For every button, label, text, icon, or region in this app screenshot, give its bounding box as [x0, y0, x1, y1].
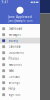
staticText: Calendar [8, 45, 20, 48]
staticText: Settings [8, 81, 19, 84]
button[interactable]: Sign out [0, 92, 40, 98]
button[interactable]: Settings [0, 80, 40, 86]
button[interactable]: Documents [0, 50, 40, 56]
staticText: Activity [8, 39, 17, 42]
staticText: Messages [8, 33, 20, 36]
staticText: 9:41 [1, 0, 8, 4]
staticText: Help [8, 87, 15, 90]
button[interactable]: Dashboard [0, 26, 40, 32]
staticText: Sign out [8, 93, 20, 96]
staticText: Contacts [8, 75, 19, 78]
button[interactable]: Photos [0, 56, 40, 62]
staticText: Tasks [8, 69, 13, 72]
button[interactable]: Calendar [0, 44, 40, 50]
button[interactable]: Contacts [0, 74, 40, 80]
staticText: Photos [8, 57, 18, 60]
staticText: Documents [8, 51, 23, 54]
button[interactable]: Help [0, 86, 40, 92]
button[interactable]: Activity [0, 38, 40, 44]
staticText: jane@example.com [8, 19, 32, 23]
button[interactable]: Favourites [0, 62, 40, 68]
button[interactable]: Tasks [0, 68, 40, 74]
staticText: Favourites [8, 63, 21, 66]
staticText: Dashboard [8, 27, 22, 30]
button[interactable]: Messages [0, 32, 40, 38]
staticText: Jane Appleseed [8, 15, 32, 19]
